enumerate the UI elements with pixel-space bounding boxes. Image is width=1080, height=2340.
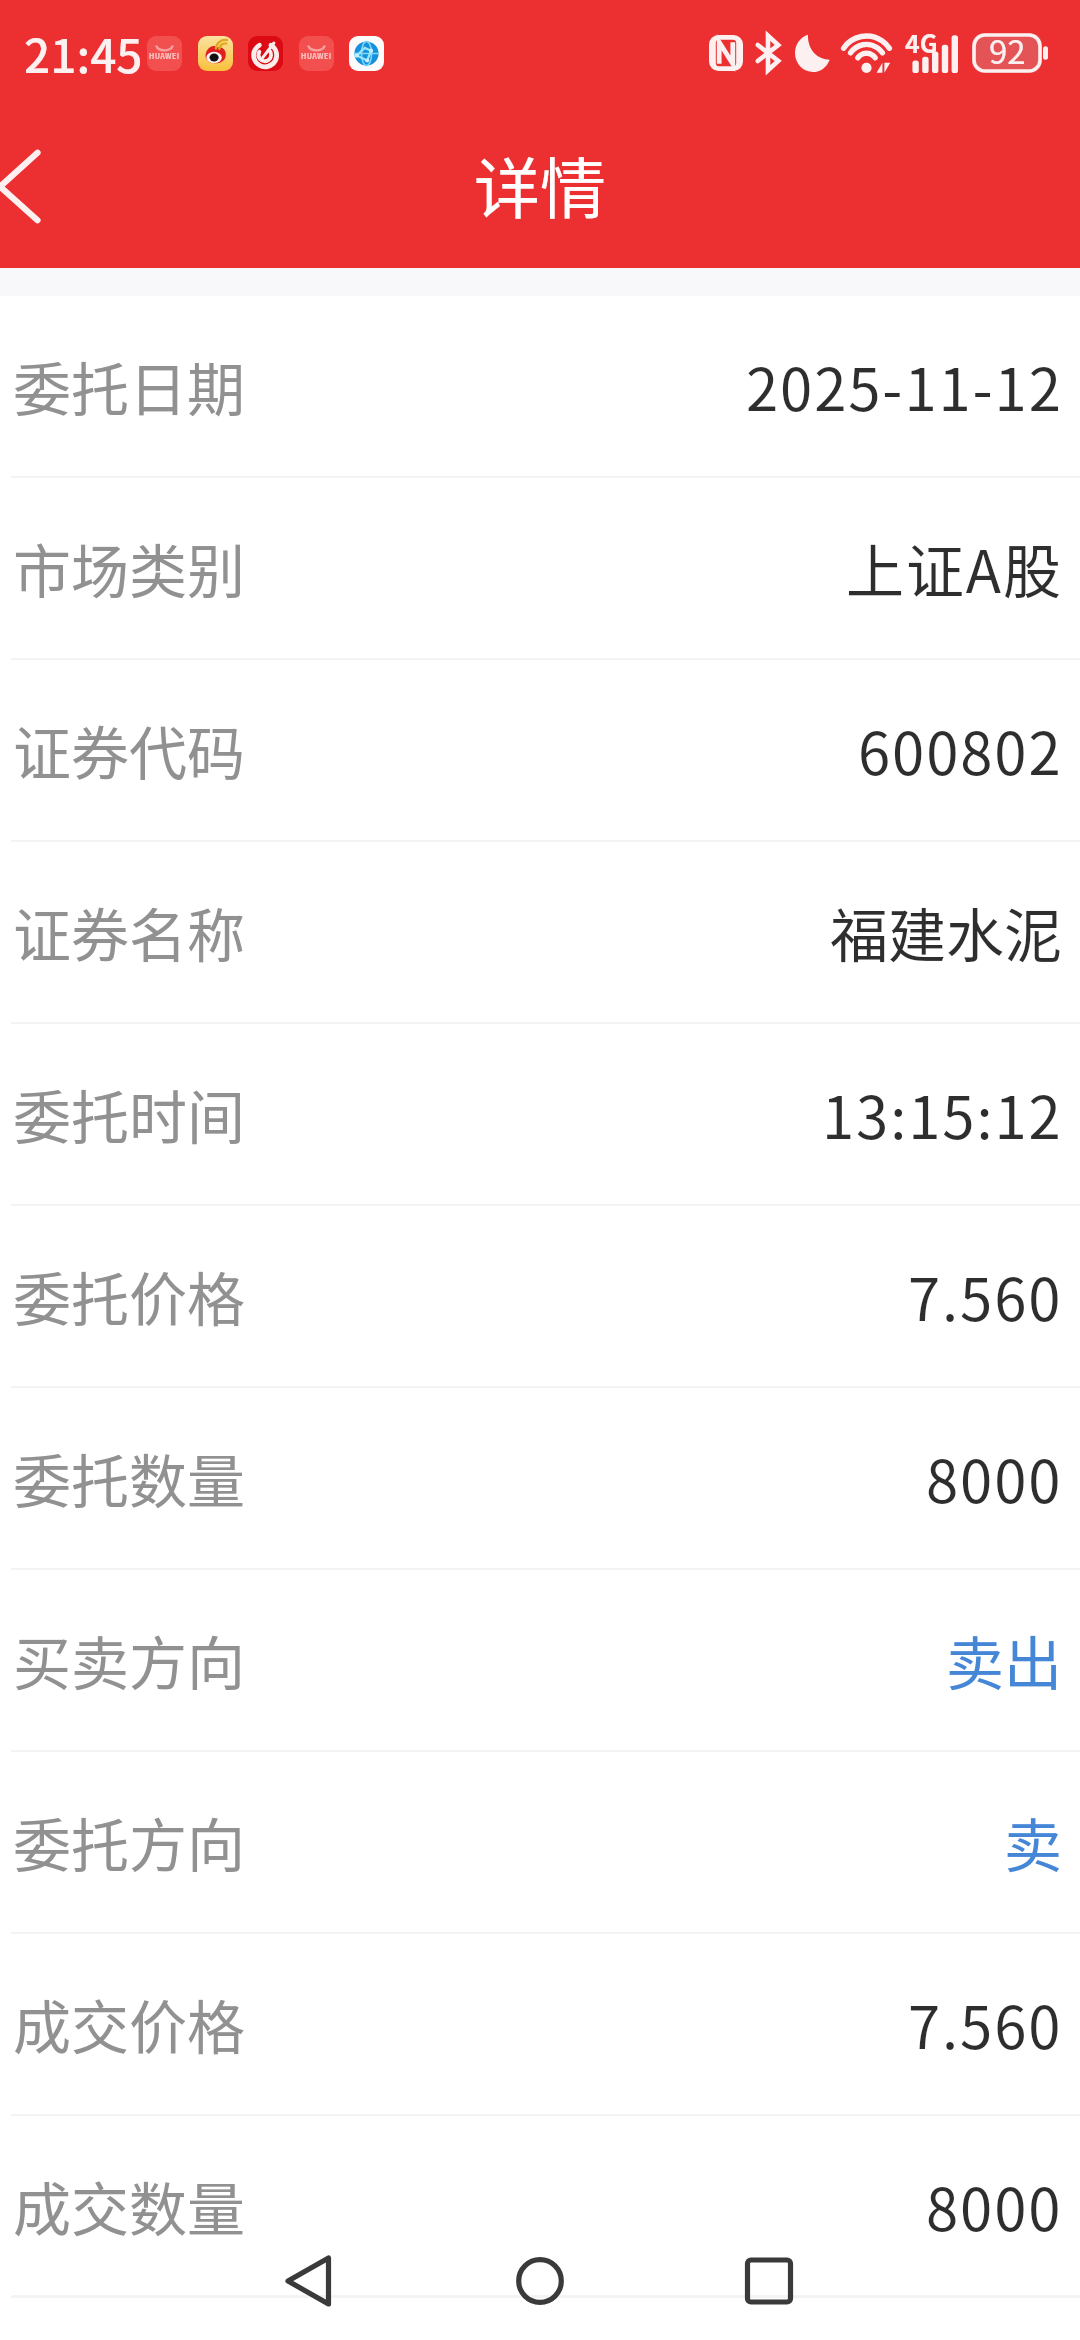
button[interactable]: 成交数量 bbox=[0, 2116, 1080, 2296]
button[interactable]: 证券代码 bbox=[0, 660, 1080, 840]
staticText: 4G bbox=[905, 24, 938, 60]
staticText: 8000 bbox=[926, 1436, 1063, 1520]
staticText: 详情 bbox=[474, 136, 606, 232]
staticText: 买卖方向 bbox=[13, 1618, 246, 1702]
staticText: 21:45 bbox=[24, 20, 143, 87]
button[interactable]: Recents bbox=[719, 2231, 819, 2331]
staticText: 委托价格 bbox=[13, 1254, 246, 1338]
button[interactable]: Back bbox=[258, 2231, 358, 2331]
staticText: 600802 bbox=[858, 708, 1063, 792]
button[interactable]: Home bbox=[490, 2231, 590, 2331]
staticText: 2025-11-12 bbox=[746, 344, 1063, 428]
staticText: 成交数量 bbox=[13, 2164, 246, 2248]
staticText: 7.560 bbox=[908, 1982, 1063, 2066]
button[interactable]: 委托日期 bbox=[0, 296, 1080, 476]
staticText: 证券名称 bbox=[13, 890, 246, 974]
staticText: 委托日期 bbox=[13, 344, 246, 428]
button[interactable]: 成交价格 bbox=[0, 1934, 1080, 2114]
staticText: 市场类别 bbox=[13, 526, 246, 610]
staticText: 委托数量 bbox=[13, 1436, 246, 1520]
staticText: 委托方向 bbox=[13, 1800, 246, 1884]
staticText: 成交价格 bbox=[13, 1982, 246, 2066]
button[interactable]: 委托价格 bbox=[0, 1206, 1080, 1386]
staticText: 7.560 bbox=[908, 1254, 1063, 1338]
staticText: 福建水泥 bbox=[830, 890, 1063, 974]
button[interactable]: 市场类别 bbox=[0, 478, 1080, 658]
staticText: 92 bbox=[989, 26, 1026, 66]
staticText: 8000 bbox=[926, 2164, 1063, 2248]
staticText: 卖出 bbox=[946, 1618, 1063, 1702]
staticText: HUAWEI bbox=[301, 51, 332, 61]
staticText: HUAWEI bbox=[149, 51, 180, 61]
staticText: 卖 bbox=[1004, 1800, 1063, 1884]
button[interactable]: 委托数量 bbox=[0, 1388, 1080, 1568]
button[interactable]: 买卖方向 bbox=[0, 1570, 1080, 1750]
staticText: 委托时间 bbox=[13, 1072, 246, 1156]
button[interactable]: 证券名称 bbox=[0, 842, 1080, 1022]
staticText: 证券代码 bbox=[13, 708, 246, 792]
staticText: 13:15:12 bbox=[822, 1072, 1063, 1156]
staticText: 上证A股 bbox=[846, 526, 1063, 610]
button[interactable]: 委托时间 bbox=[0, 1024, 1080, 1204]
button[interactable]: 委托方向 bbox=[0, 1752, 1080, 1932]
button[interactable]: Back bbox=[0, 113, 96, 243]
